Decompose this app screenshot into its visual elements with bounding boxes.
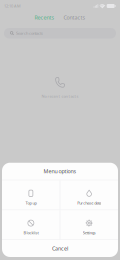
staticText: Cancel xyxy=(52,245,68,252)
staticText: 12:10 AM xyxy=(4,3,21,9)
button[interactable]: Top up xyxy=(2,180,60,210)
staticText: No recent contacts xyxy=(41,93,78,99)
button[interactable]: Purchase data xyxy=(60,180,118,210)
staticText: Settings xyxy=(83,230,96,235)
staticText: Blocklist xyxy=(23,230,38,235)
button[interactable]: Cancel xyxy=(2,240,118,257)
staticText: Top up xyxy=(25,200,36,206)
staticText: Contacts xyxy=(63,14,85,21)
staticText: Search contacts xyxy=(16,31,43,36)
button[interactable]: Settings xyxy=(60,210,118,239)
staticText: Recents xyxy=(34,14,54,21)
staticText: Menu options xyxy=(43,168,76,175)
staticText: Purchase data xyxy=(77,200,101,206)
button[interactable]: Blocklist xyxy=(2,210,60,239)
button[interactable]: Contacts xyxy=(63,14,85,21)
button[interactable]: Search contacts xyxy=(4,28,116,38)
button[interactable]: Recents xyxy=(34,14,54,21)
